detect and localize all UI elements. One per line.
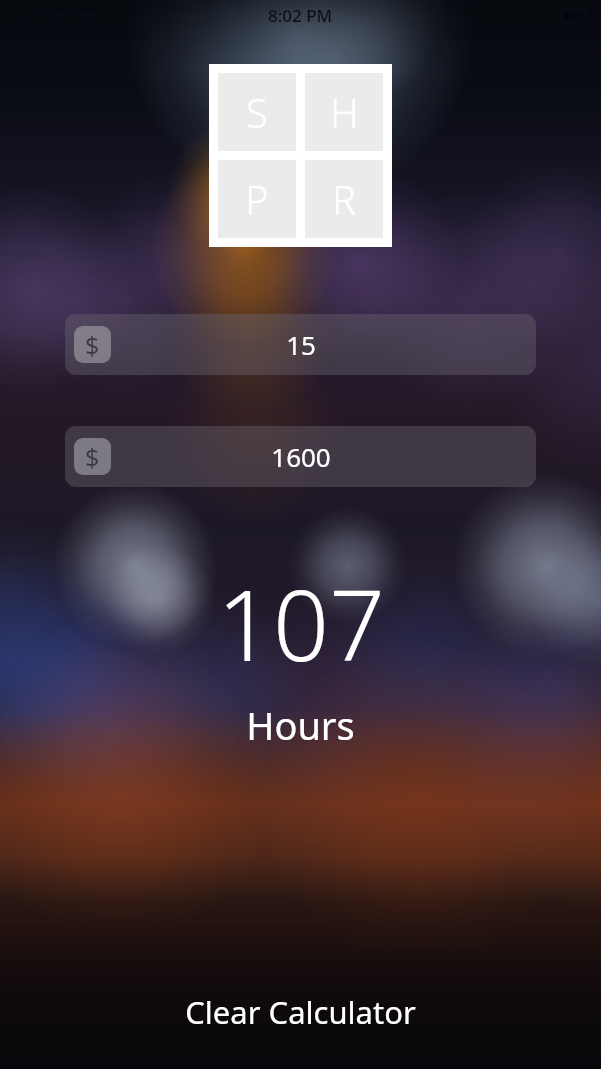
button[interactable]: 1600: [65, 426, 536, 487]
staticText: H: [330, 85, 359, 139]
staticText: $: [85, 440, 100, 474]
staticText: $: [85, 328, 100, 362]
staticText: 15: [286, 327, 316, 362]
staticText: P: [245, 172, 269, 226]
staticText: 8:02 PM: [268, 4, 333, 27]
staticText: S: [246, 85, 268, 139]
staticText: 107: [217, 556, 385, 689]
other: Hourly rate: [74, 326, 111, 363]
button[interactable]: 15: [65, 314, 536, 375]
staticText: 1600: [271, 439, 331, 474]
staticText: R: [332, 172, 356, 226]
other: Target amount: [74, 438, 111, 475]
staticText: Hours: [246, 699, 355, 751]
button[interactable]: Clear Calculator: [161, 985, 440, 1039]
staticText: Clear Calculator: [185, 991, 416, 1033]
